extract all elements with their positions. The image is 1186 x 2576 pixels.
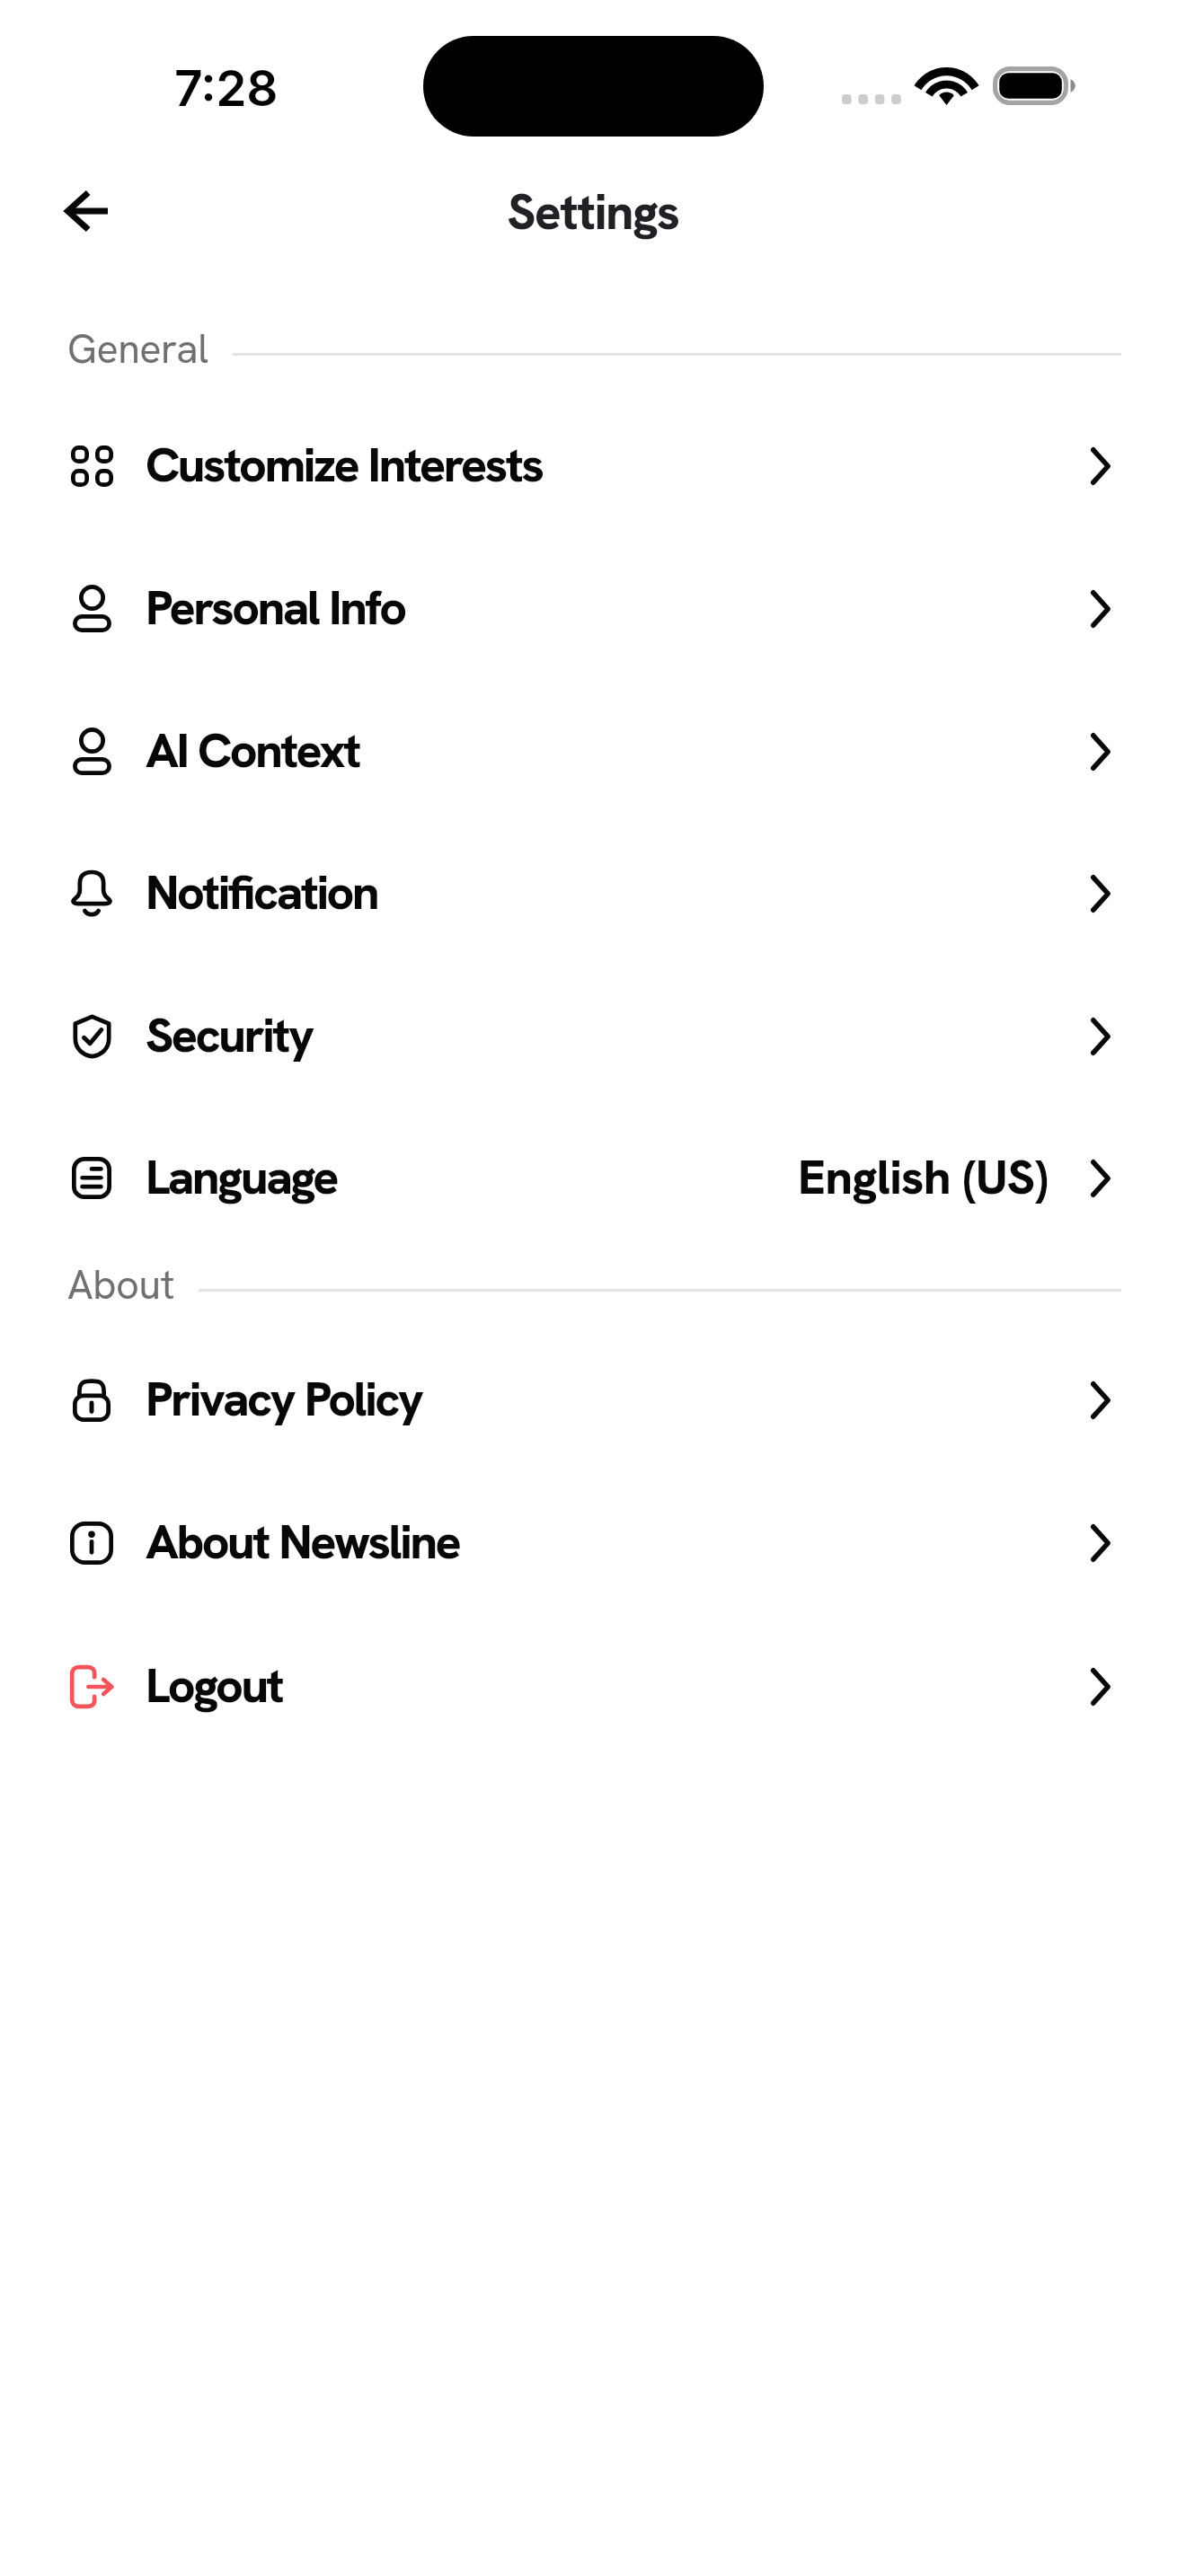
staticText: General <box>67 322 208 375</box>
staticText: 7:28 <box>174 58 278 119</box>
button[interactable]: Notification <box>0 822 1186 965</box>
staticText: About <box>67 1258 174 1311</box>
button[interactable]: Language <box>0 1107 1186 1249</box>
button[interactable]: Security <box>0 965 1186 1107</box>
button[interactable]: About Newsline <box>0 1471 1186 1614</box>
staticText: Privacy Policy <box>146 1367 422 1430</box>
button[interactable]: Back <box>41 166 131 256</box>
staticText: Customize Interests <box>146 433 543 496</box>
button[interactable]: Customize Interests <box>0 394 1186 537</box>
staticText: Language <box>146 1145 337 1208</box>
staticText: About Newsline <box>146 1510 460 1573</box>
staticText: Settings <box>0 180 1186 244</box>
staticText: English (US) <box>798 1145 1049 1208</box>
button[interactable]: Personal Info <box>0 537 1186 680</box>
staticText: Security <box>146 1003 313 1066</box>
button[interactable]: Logout <box>0 1615 1186 1758</box>
button[interactable]: Privacy Policy <box>0 1328 1186 1471</box>
button[interactable]: AI Context <box>0 680 1186 823</box>
staticText: Personal Info <box>146 576 405 639</box>
staticText: Logout <box>146 1654 283 1716</box>
staticText: AI Context <box>146 719 359 781</box>
staticText: Notification <box>146 860 378 923</box>
